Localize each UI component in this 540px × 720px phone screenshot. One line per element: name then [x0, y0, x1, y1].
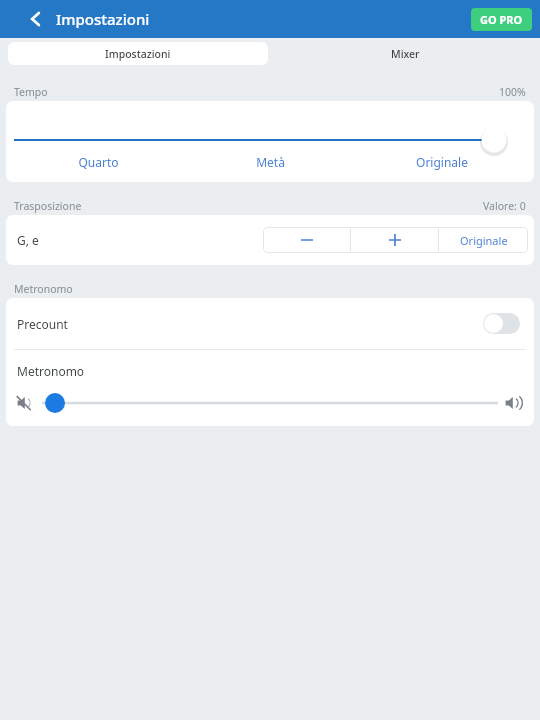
button[interactable]: Quarto [12, 154, 184, 170]
button[interactable]: GO PRO [471, 8, 532, 31]
button[interactable]: Back [22, 5, 50, 33]
staticText: Quarto [78, 154, 119, 170]
staticText: Tempo [14, 85, 48, 99]
staticText: Valore: 0 [483, 199, 526, 213]
button[interactable]: Precount [6, 298, 534, 349]
staticText: GO PRO [480, 12, 523, 27]
button[interactable]: Increase [351, 227, 438, 253]
staticText: 100% [499, 85, 526, 99]
button[interactable]: Originale [439, 227, 528, 253]
other: Precount toggle [483, 313, 520, 334]
button[interactable]: Mute [16, 393, 36, 413]
button[interactable]: Impostazioni [8, 42, 268, 65]
staticText: Impostazioni [56, 9, 150, 29]
staticText: Impostazioni [105, 47, 171, 61]
staticText: Originale [416, 154, 468, 170]
button[interactable]: Mixer [270, 38, 540, 69]
staticText: Originale [460, 233, 508, 248]
staticText: Metronomo [14, 282, 73, 296]
staticText: Trasposizione [14, 199, 82, 213]
staticText: Mixer [391, 47, 420, 61]
staticText: G, e [17, 232, 39, 248]
staticText: Metronomo [17, 363, 85, 379]
button[interactable]: Originale [356, 154, 528, 170]
button[interactable]: Volume up [504, 393, 524, 413]
staticText: Metà [256, 154, 285, 170]
button[interactable]: Metà [184, 154, 356, 170]
button[interactable]: Decrease [263, 227, 350, 253]
staticText: Precount [17, 316, 68, 332]
